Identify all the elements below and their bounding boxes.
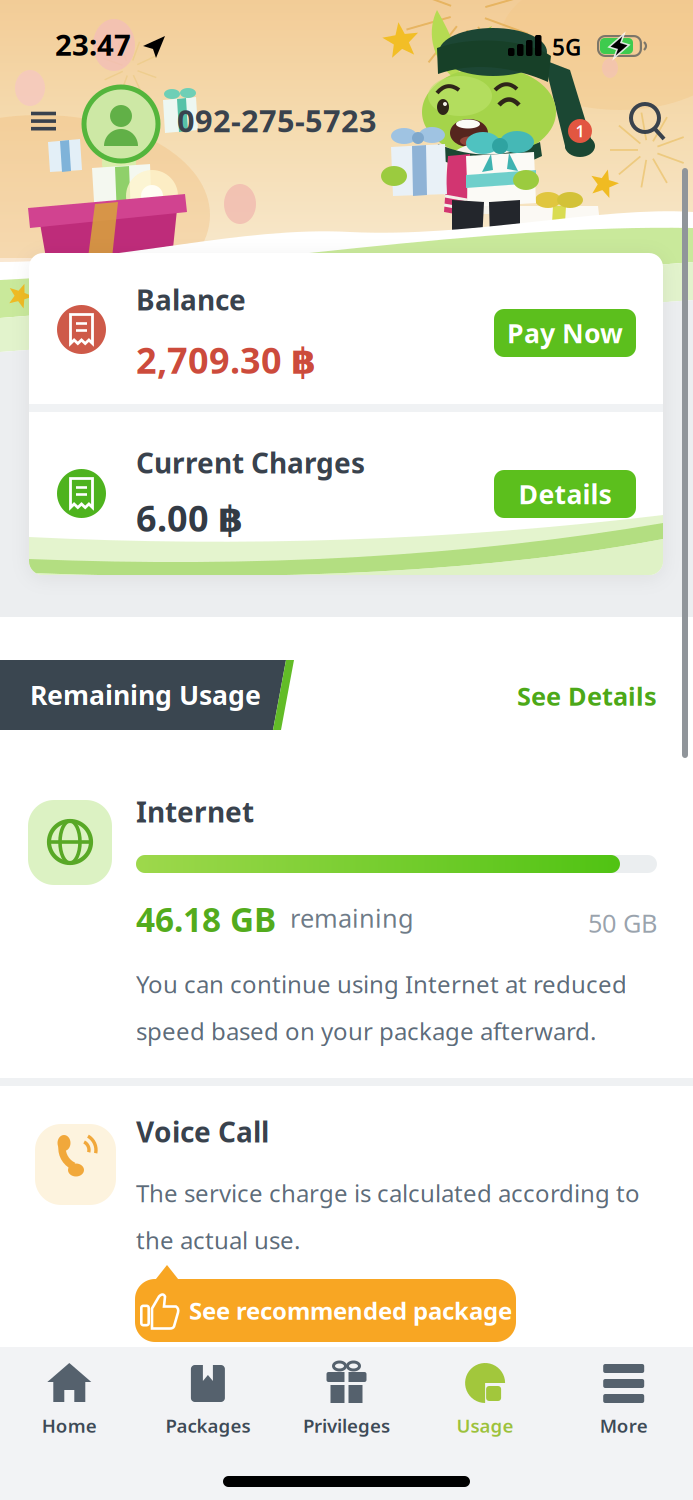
staticText: Packages — [165, 1413, 250, 1438]
button[interactable]: More — [555, 1358, 693, 1448]
staticText: Details — [518, 476, 611, 512]
staticText: See recommended package — [189, 1295, 512, 1326]
staticText: More — [600, 1413, 648, 1438]
staticText: 5G — [552, 32, 581, 62]
button[interactable]: Pay Now — [494, 309, 636, 357]
staticText: the actual use. — [136, 1224, 300, 1256]
staticText: 092-275-5723 — [177, 100, 377, 141]
button[interactable]: Usage — [416, 1358, 554, 1448]
staticText: See Details — [517, 679, 657, 713]
button[interactable]: Home — [0, 1358, 138, 1448]
button[interactable]: Packages — [139, 1358, 277, 1448]
button[interactable]: Menu — [31, 110, 57, 132]
staticText: remaining — [290, 901, 414, 935]
staticText: 2,709.30 ฿ — [136, 336, 316, 384]
button[interactable]: Privileges — [277, 1358, 415, 1448]
button[interactable]: See recommended package — [135, 1279, 516, 1342]
staticText: 50 GB — [588, 906, 657, 940]
button[interactable]: Search — [627, 100, 669, 144]
button[interactable]: See Details — [437, 679, 657, 713]
staticText: Home — [42, 1413, 97, 1438]
staticText: Balance — [136, 281, 246, 318]
staticText: The service charge is calculated accordi… — [136, 1177, 640, 1209]
button[interactable]: Details — [494, 470, 636, 518]
staticText: Remaining Usage — [30, 677, 261, 712]
staticText: 1 — [575, 120, 584, 142]
staticText: Pay Now — [507, 315, 623, 351]
staticText: You can continue using Internet at reduc… — [136, 968, 627, 1000]
staticText: 46.18 GB — [136, 897, 276, 941]
staticText: Current Charges — [136, 444, 365, 481]
staticText: Internet — [136, 793, 254, 830]
staticText: 23:47 — [55, 25, 131, 64]
staticText: Privileges — [303, 1413, 390, 1438]
staticText: Usage — [457, 1413, 514, 1438]
button[interactable]: Profile — [84, 87, 158, 161]
staticText: 6.00 ฿ — [136, 494, 243, 542]
staticText: Voice Call — [136, 1113, 269, 1150]
staticText: speed based on your package afterward. — [136, 1015, 596, 1047]
